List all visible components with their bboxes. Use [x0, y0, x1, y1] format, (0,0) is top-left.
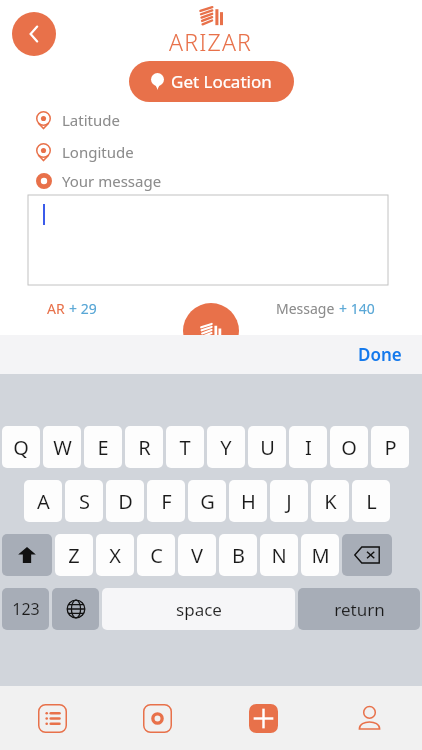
staticText: N	[271, 542, 287, 569]
staticText: L	[366, 488, 377, 515]
staticText: + 29	[69, 299, 97, 318]
staticText: D	[118, 488, 133, 515]
staticText: M	[311, 542, 330, 569]
button[interactable]: H	[229, 480, 267, 522]
button[interactable]: M	[301, 534, 339, 576]
button[interactable]: P	[371, 426, 409, 468]
button[interactable]: Profile	[316, 686, 422, 750]
button[interactable]: Longitude	[0, 139, 422, 165]
staticText: C	[150, 542, 163, 569]
staticText: Your message	[62, 171, 162, 191]
button[interactable]: Y	[207, 426, 245, 468]
staticText: 123	[12, 598, 40, 620]
staticText: A	[37, 488, 50, 515]
button[interactable]: Change keyboard	[52, 588, 99, 630]
button[interactable]: K	[311, 480, 349, 522]
button[interactable]: 123	[2, 588, 49, 630]
button[interactable]: U	[248, 426, 286, 468]
button[interactable]: J	[270, 480, 308, 522]
staticText: I	[305, 434, 312, 461]
staticText: V	[191, 542, 203, 569]
staticText: P	[384, 434, 397, 461]
button[interactable]: D	[106, 480, 144, 522]
staticText: B	[232, 542, 245, 569]
button[interactable]: Z	[55, 534, 93, 576]
button[interactable]: Done	[338, 335, 422, 374]
staticText: H	[241, 488, 256, 515]
button[interactable]: R	[125, 426, 163, 468]
staticText: U	[260, 434, 275, 461]
staticText: Longitude	[62, 142, 134, 162]
button[interactable]: List	[0, 686, 105, 750]
button[interactable]: S	[65, 480, 103, 522]
button[interactable]: Shift	[2, 534, 52, 576]
staticText: T	[179, 434, 191, 461]
button[interactable]: F	[147, 480, 185, 522]
staticText: S	[79, 488, 90, 515]
button[interactable]: return	[298, 588, 420, 630]
staticText: Message	[276, 299, 339, 318]
staticText: O	[341, 434, 357, 461]
staticText: X	[109, 542, 121, 569]
button[interactable]: L	[352, 480, 390, 522]
staticText: E	[97, 434, 109, 461]
staticText: W	[53, 434, 72, 461]
staticText: K	[324, 488, 337, 515]
staticText: AR	[47, 299, 69, 318]
button[interactable]: Back	[12, 12, 56, 56]
staticText: Q	[13, 434, 29, 461]
button[interactable]: Your message	[0, 171, 422, 191]
staticText: Z	[68, 542, 80, 569]
staticText: R	[138, 434, 151, 461]
button[interactable]: Q	[2, 426, 40, 468]
staticText: space	[176, 598, 222, 621]
staticText: Latitude	[62, 110, 120, 130]
button[interactable]: Camera	[105, 686, 210, 750]
staticText: J	[286, 488, 292, 515]
button[interactable]: space	[102, 588, 295, 630]
button[interactable]	[28, 195, 388, 285]
staticText: Get Location	[171, 70, 272, 93]
button[interactable]: C	[137, 534, 175, 576]
staticText: return	[334, 598, 385, 621]
button[interactable]: N	[260, 534, 298, 576]
button[interactable]: Latitude	[0, 107, 422, 133]
button[interactable]: B	[219, 534, 257, 576]
staticText: F	[161, 488, 172, 515]
button[interactable]: G	[188, 480, 226, 522]
button[interactable]: Get Location	[129, 61, 294, 102]
button[interactable]: X	[96, 534, 134, 576]
button[interactable]: W	[43, 426, 81, 468]
button[interactable]: O	[330, 426, 368, 468]
staticText: G	[200, 488, 215, 515]
button[interactable]: A	[24, 480, 62, 522]
button[interactable]: Add	[210, 686, 316, 750]
button[interactable]: V	[178, 534, 216, 576]
staticText: ARIZAR	[169, 26, 253, 57]
staticText: + 140	[339, 299, 375, 318]
button[interactable]: Backspace	[342, 534, 392, 576]
button[interactable]: E	[84, 426, 122, 468]
staticText: Done	[358, 343, 402, 366]
button[interactable]: T	[166, 426, 204, 468]
button[interactable]: Send	[183, 303, 239, 359]
button[interactable]: I	[289, 426, 327, 468]
staticText: Y	[220, 434, 232, 461]
